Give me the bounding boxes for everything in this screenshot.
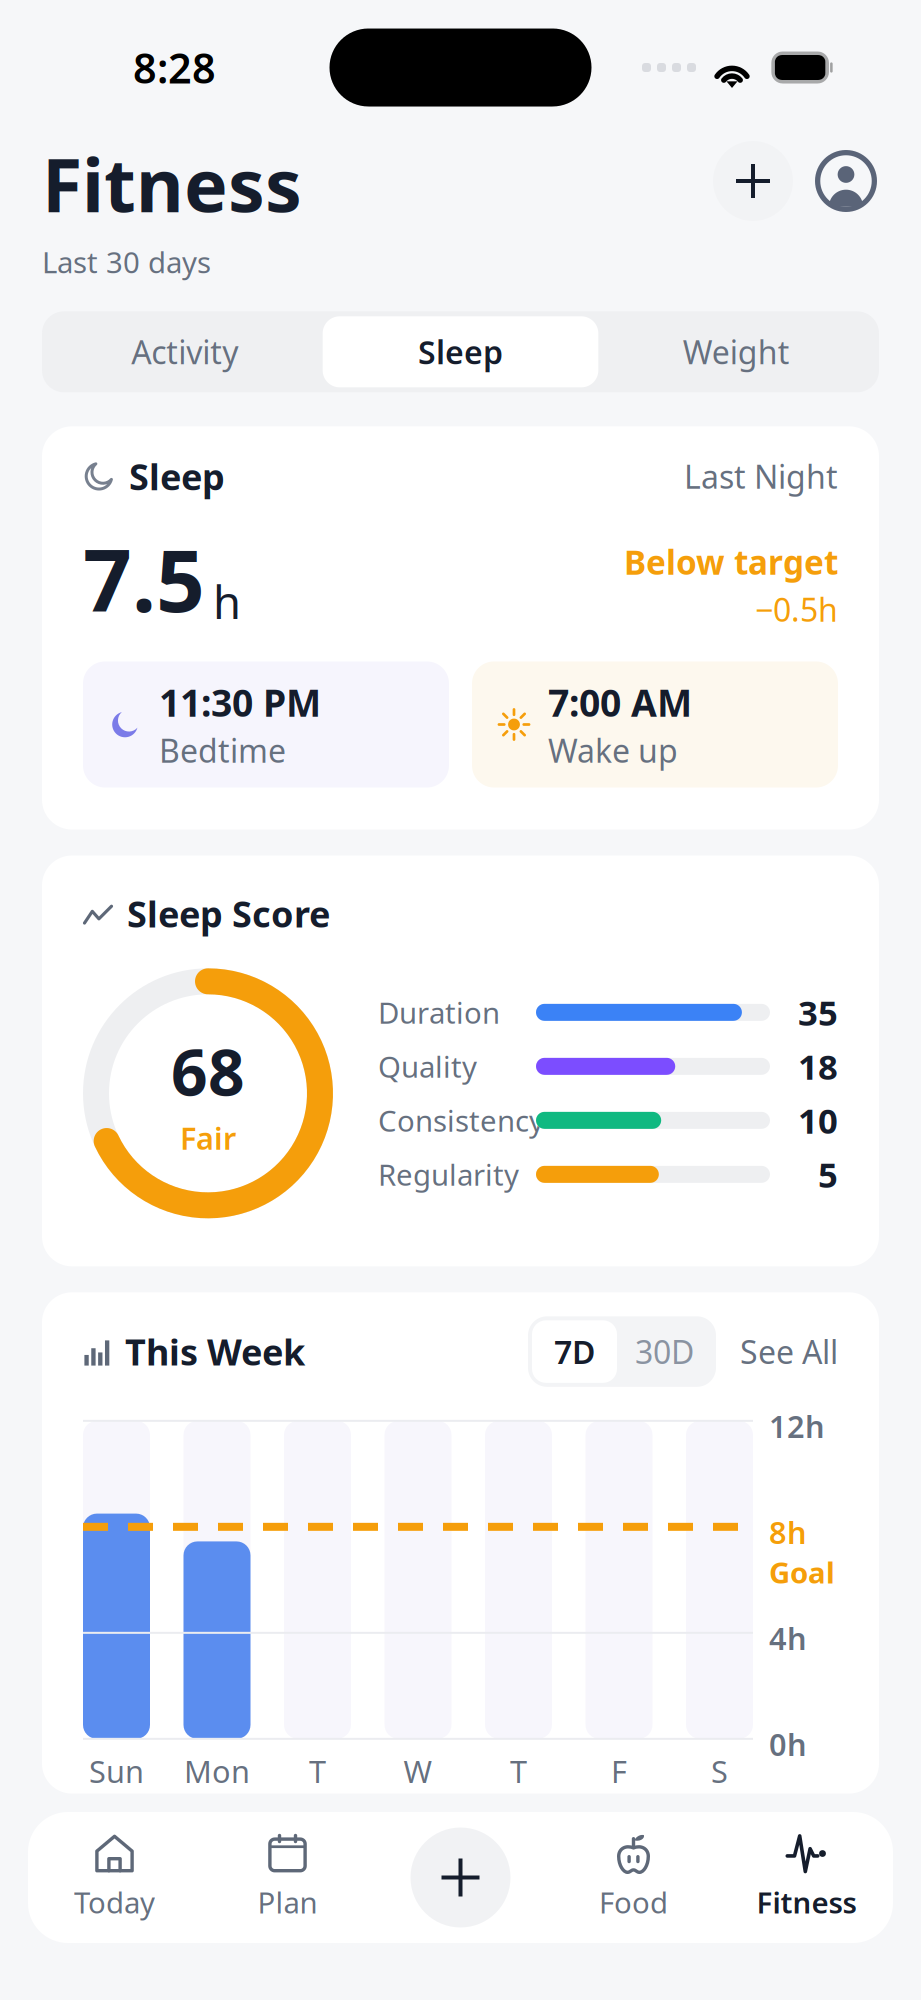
staticText: 7:00 AM	[548, 677, 692, 727]
staticText: −0.5h	[755, 588, 838, 630]
staticText: Sleep	[418, 331, 503, 373]
staticText: 30D	[635, 1330, 694, 1373]
staticText: This Week	[125, 1328, 305, 1375]
staticText: Fitness	[42, 135, 302, 232]
button[interactable]: 30D	[617, 1320, 712, 1383]
button[interactable]: See All	[716, 1330, 838, 1373]
staticText: Fitness	[756, 1882, 856, 1921]
button[interactable]: Add entry	[410, 1827, 510, 1927]
staticText: 7.5	[83, 522, 205, 635]
staticText: See All	[740, 1330, 838, 1373]
staticText: Food	[599, 1882, 668, 1921]
staticText: Goal	[769, 1553, 835, 1592]
staticText: Consistency	[378, 1101, 544, 1140]
staticText: Regularity	[378, 1155, 519, 1194]
button[interactable]: Sleep	[323, 316, 598, 387]
staticText: 35	[798, 989, 838, 1035]
staticText: 0h	[769, 1724, 807, 1764]
staticText: Sun	[89, 1751, 144, 1791]
staticText: Weight	[683, 331, 790, 373]
staticText: Mon	[184, 1751, 250, 1791]
staticText: S	[711, 1751, 728, 1791]
button[interactable]: Today	[28, 1812, 201, 1943]
staticText: Fair	[180, 1117, 236, 1158]
staticText: Activity	[131, 331, 238, 373]
staticText: 10	[798, 1097, 838, 1143]
staticText: 7D	[554, 1330, 595, 1373]
staticText: F	[611, 1751, 627, 1791]
staticText: Wake up	[548, 729, 678, 771]
staticText: Plan	[257, 1882, 317, 1921]
button[interactable]: Fitness	[720, 1812, 893, 1943]
button[interactable]: Weight	[598, 316, 874, 387]
staticText: 18	[798, 1043, 838, 1089]
staticText: Quality	[378, 1047, 477, 1086]
button[interactable]: Add	[713, 141, 793, 221]
button[interactable]: Activity	[47, 316, 323, 387]
staticText: Sleep	[129, 452, 225, 500]
staticText: W	[403, 1751, 432, 1791]
staticText: Today	[74, 1882, 155, 1921]
staticText: Duration	[378, 993, 500, 1032]
staticText: Bedtime	[159, 729, 286, 771]
staticText: Last Night	[684, 455, 838, 497]
staticText: 8:28	[133, 40, 216, 95]
button[interactable]: 7D	[532, 1320, 617, 1383]
staticText: h	[213, 571, 241, 631]
button[interactable]: Food	[547, 1812, 720, 1943]
staticText: 12h	[769, 1406, 825, 1446]
button[interactable]: Profile	[813, 141, 879, 221]
staticText: T	[510, 1751, 527, 1791]
staticText: 8h	[769, 1512, 807, 1552]
staticText: 4h	[769, 1618, 807, 1658]
staticText: Sleep Score	[127, 889, 330, 937]
staticText: 5	[818, 1151, 838, 1197]
staticText: 11:30 PM	[159, 677, 321, 727]
staticText: 68	[171, 1028, 245, 1113]
staticText: Below target	[624, 540, 838, 584]
button[interactable]: Plan	[201, 1812, 374, 1943]
staticText: T	[309, 1751, 326, 1791]
staticText: Last 30 days	[42, 242, 211, 281]
